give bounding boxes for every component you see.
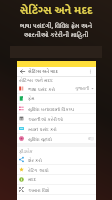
button[interactable]: આરતીઓ કરેરીઓ	[17, 114, 96, 123]
staticText: સુવિધા ચૂનવો	[28, 136, 52, 142]
staticText: ફીડબેક	[19, 149, 33, 154]
staticText: ભાષા પસંદ કરો	[28, 86, 55, 92]
staticText: રેટિંગ આપો	[28, 167, 49, 173]
staticText: ફ્રેમ	[28, 96, 35, 101]
staticText: મ્યાન પસંદ કરો	[28, 126, 57, 132]
staticText: સુવિધા બનાવવાનો વિકલ્પ	[28, 106, 75, 112]
staticText: મદદ	[28, 177, 37, 182]
button[interactable]: રેટિંગ આપો	[17, 165, 96, 174]
button[interactable]: Back	[17, 67, 28, 76]
button[interactable]: સુવિધા ચૂનવો	[17, 134, 96, 143]
button[interactable]: More options	[85, 67, 96, 76]
button[interactable]: ભાષા પસંદ કરો	[17, 84, 96, 93]
button[interactable]: અમારા વિશે	[17, 185, 96, 194]
staticText: અમારા વિશે	[28, 187, 50, 193]
staticText: આરતીઓ કરેરીઓ	[28, 116, 63, 122]
button[interactable]: મ્યાન પસંદ કરો	[17, 124, 96, 133]
button[interactable]: ફ્રેમ	[17, 94, 96, 103]
staticText: સેટિંગ્સ અને મદદ	[19, 77, 53, 84]
staticText: ભાષા પસંદગી, વિવિધ ફ્રેમ અને આરતીઓ કરેરી…	[0, 21, 112, 38]
staticText: ગુજરાતી	[75, 87, 90, 91]
staticText: સેટિંગ્સ અને મદદ	[0, 1, 112, 20]
button[interactable]: Toggle	[88, 136, 94, 141]
button[interactable]: મદદ	[17, 175, 96, 184]
staticText: સેટિંગ્સ અને મદદ	[28, 68, 58, 76]
staticText: શેર કરો	[28, 157, 42, 163]
button[interactable]: સુવિધા બનાવવાનો વિકલ્પ	[17, 104, 96, 113]
button[interactable]: શેર કરો	[17, 155, 96, 164]
